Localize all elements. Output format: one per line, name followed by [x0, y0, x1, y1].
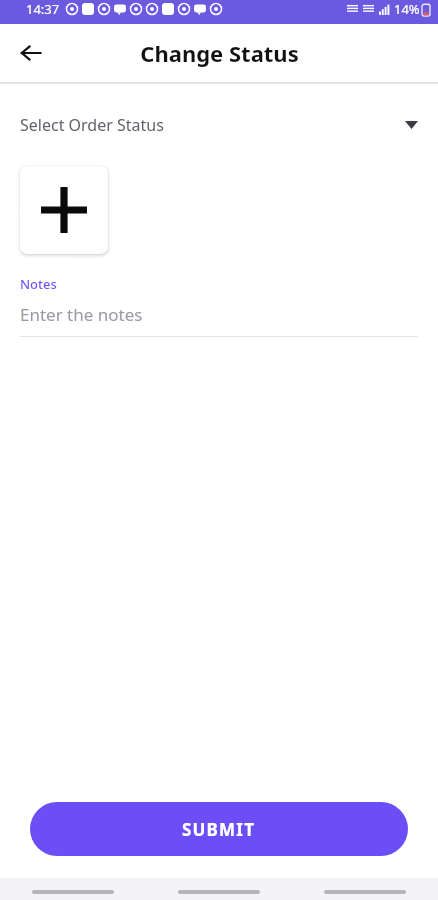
staticText: Enter the notes — [20, 303, 143, 326]
button[interactable]: SUBMIT — [30, 802, 408, 856]
staticText: Select Order Status — [20, 114, 164, 136]
staticText: Notes — [20, 275, 57, 293]
staticText: 14% — [394, 0, 420, 18]
button[interactable]: Recents — [0, 878, 146, 900]
button[interactable]: Back — [10, 32, 52, 74]
button[interactable]: Back — [292, 878, 438, 900]
staticText: SUBMIT — [182, 818, 256, 841]
button[interactable]: Select Order Status — [0, 106, 438, 144]
button[interactable]: Home — [146, 878, 292, 900]
button[interactable]: Add photo — [20, 166, 108, 254]
staticText: Change Status — [140, 38, 299, 68]
staticText: 14:37 — [26, 0, 60, 18]
button[interactable]: Notes — [0, 275, 438, 337]
